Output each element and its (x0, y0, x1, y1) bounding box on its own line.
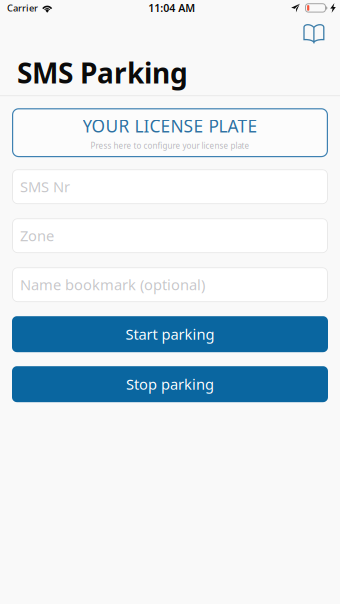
staticText: Name bookmark (optional) (20, 275, 205, 294)
staticText: Zone (20, 226, 54, 245)
button[interactable]: SMS Nr (12, 169, 328, 204)
staticText: Stop parking (126, 374, 214, 394)
staticText: SMS Nr (20, 177, 70, 196)
button[interactable]: YOUR LICENSE PLATE (12, 108, 328, 157)
button[interactable]: Start parking (12, 316, 328, 352)
staticText: Press here to configure your license pla… (90, 140, 249, 151)
button[interactable]: Stop parking (12, 366, 328, 402)
staticText: SMS Parking (17, 54, 188, 91)
staticText: YOUR LICENSE PLATE (82, 114, 257, 137)
staticText: Carrier (7, 2, 38, 14)
staticText: Start parking (125, 324, 214, 344)
button[interactable]: Bookmarks (291, 20, 340, 45)
button[interactable]: Zone (12, 218, 328, 253)
staticText: 11:04 AM (148, 1, 195, 15)
button[interactable]: Name bookmark (optional) (12, 267, 328, 302)
